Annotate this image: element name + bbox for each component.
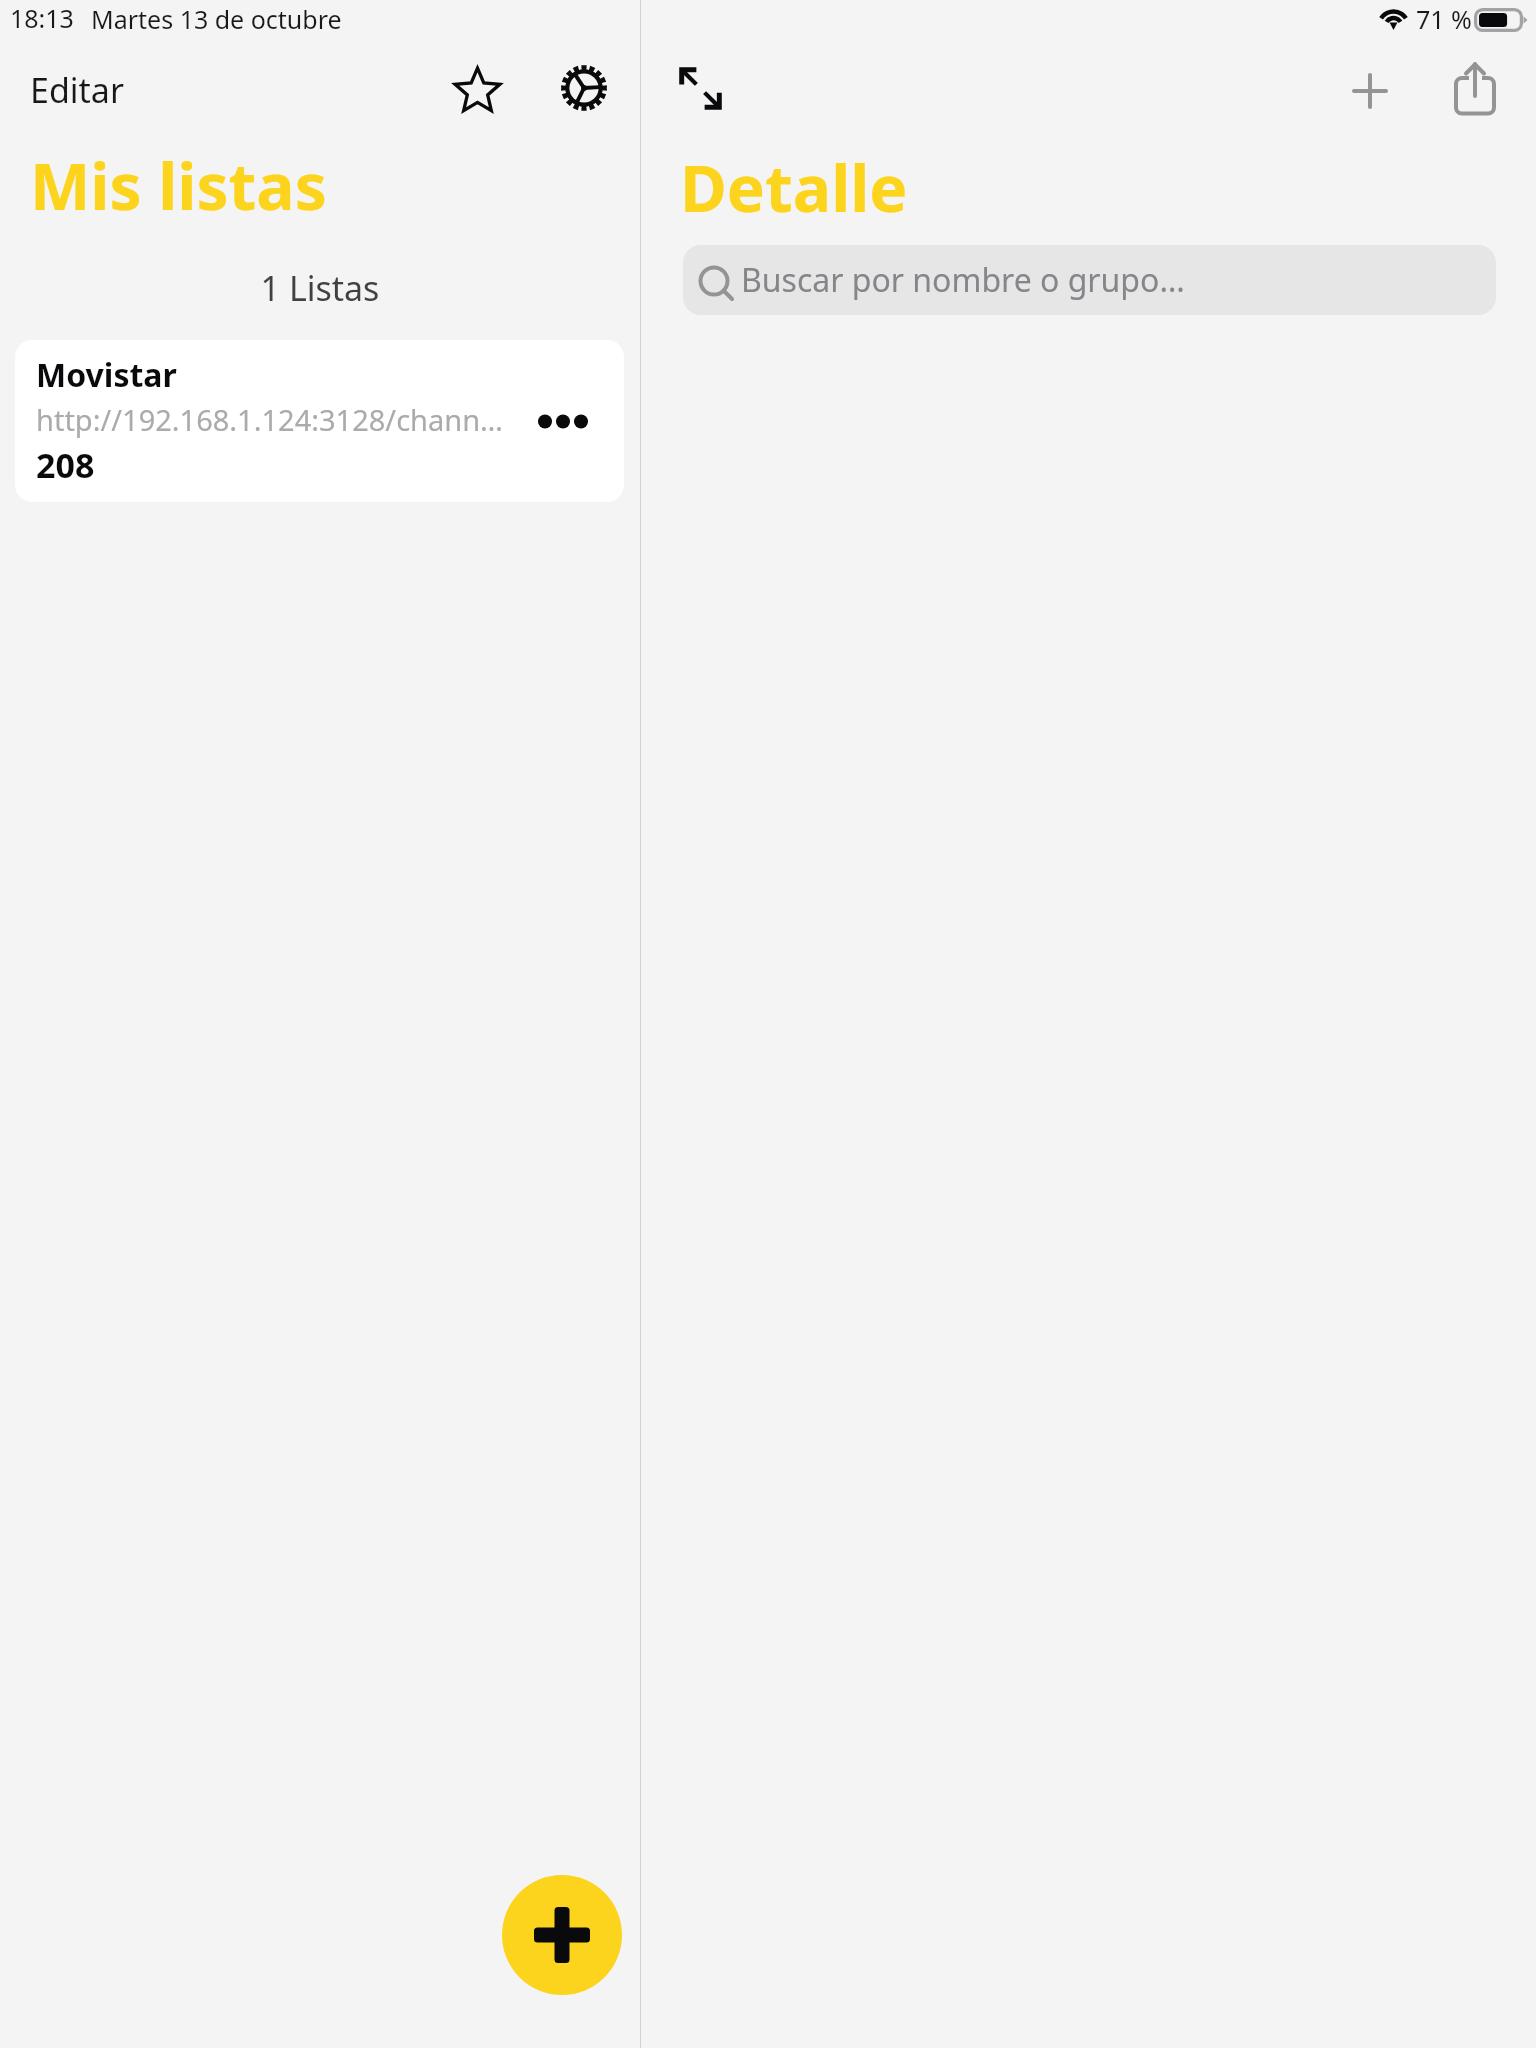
button[interactable]: Ajustes (552, 56, 616, 120)
staticText: 71 % (1416, 2, 1472, 36)
staticText: 208 (36, 442, 95, 488)
staticText: http://192.168.1.124:3128/chann… (36, 400, 504, 439)
button[interactable]: Añadir lista (502, 1875, 622, 1995)
staticText: Buscar por nombre o grupo… (741, 258, 1185, 302)
staticText: 1 Listas (0, 265, 640, 311)
button[interactable]: Movistar (15, 340, 624, 502)
button[interactable]: Añadir (1340, 61, 1400, 121)
staticText: Martes 13 de octubre (91, 2, 342, 36)
button[interactable]: Más opciones (518, 392, 606, 450)
staticText: Editar (30, 67, 124, 113)
button[interactable]: Expandir (673, 61, 728, 116)
button[interactable]: Editar (18, 62, 136, 118)
button[interactable]: Favoritos (446, 59, 510, 123)
staticText: Detalle (680, 144, 908, 231)
button[interactable]: Compartir (1446, 56, 1502, 118)
button[interactable]: Buscar por nombre o grupo… (683, 245, 1496, 315)
staticText: 18:13 (10, 1, 74, 35)
staticText: Movistar (36, 353, 177, 397)
staticText: Mis listas (30, 142, 327, 229)
